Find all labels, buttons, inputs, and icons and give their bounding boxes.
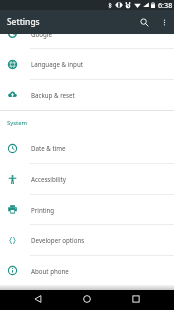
button[interactable]: Home [73, 291, 101, 307]
staticText: Backup & reset [31, 91, 75, 99]
staticText: Google [31, 30, 52, 38]
button[interactable]: Recents [122, 291, 150, 307]
staticText: Accessibility [31, 175, 66, 183]
staticText: Printing [31, 206, 55, 214]
button[interactable]: Google [0, 18, 174, 49]
button[interactable]: Printing [0, 195, 174, 224]
button[interactable]: Search [134, 12, 154, 32]
button[interactable]: Developer options [0, 225, 174, 255]
button[interactable]: Date & time [0, 133, 174, 163]
staticText: Date & time [31, 144, 66, 152]
staticText: 6:38 [158, 0, 173, 10]
button[interactable]: Accessibility [0, 164, 174, 194]
staticText: Language & input [31, 60, 83, 68]
button[interactable]: Backup & reset [0, 80, 174, 109]
staticText: Developer options [31, 236, 85, 244]
staticText: About phone [31, 267, 69, 275]
button[interactable]: Back [24, 291, 52, 307]
button[interactable]: About phone [0, 256, 174, 285]
button[interactable]: More options [154, 12, 174, 32]
button[interactable]: Language & input [0, 49, 174, 79]
staticText: Settings [7, 16, 40, 27]
staticText: System [7, 119, 28, 127]
